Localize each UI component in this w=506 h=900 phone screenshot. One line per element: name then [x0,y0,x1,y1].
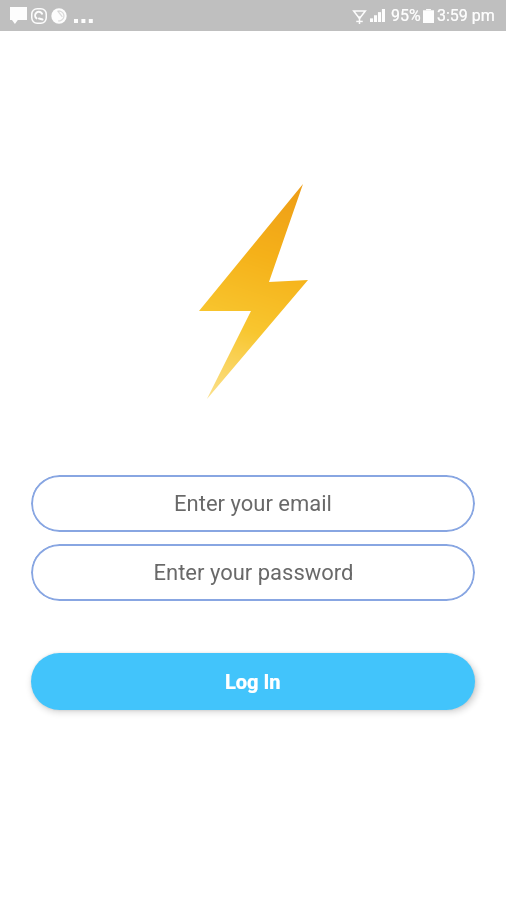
button[interactable]: Enter your password [31,544,475,601]
staticText: 95% [391,6,421,25]
staticText: Enter your password [153,560,354,586]
other: Wi-Fi [353,8,366,24]
button[interactable]: Enter your email [31,475,475,532]
staticText: Enter your email [174,491,332,517]
other: Browser [51,8,67,24]
other: Mobile signal [370,9,385,22]
other: WhatsApp [31,8,47,24]
staticText: 3:59 pm [437,6,495,25]
other: Messages [10,7,27,24]
button[interactable]: Log In [31,653,475,710]
other: App logo [199,184,308,399]
staticText: Log In [225,670,281,693]
other: More notifications [74,19,90,23]
other: Battery [423,9,434,23]
